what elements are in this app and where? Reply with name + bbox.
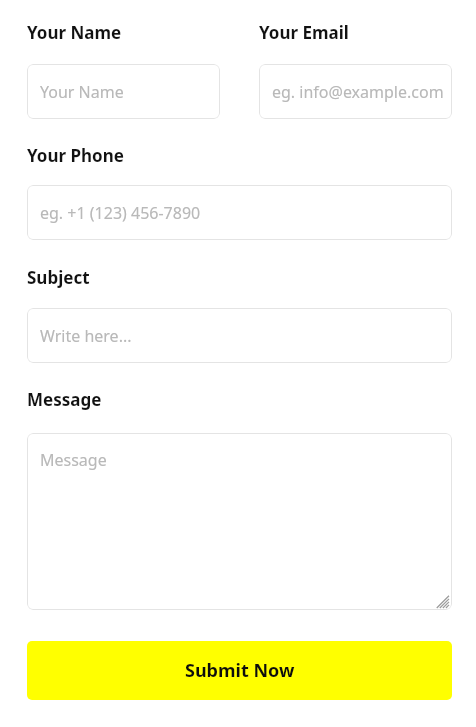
staticText: Your Name (27, 21, 122, 44)
staticText: Submit Now (185, 658, 295, 683)
staticText: Your Name (40, 81, 124, 103)
staticText: Message (40, 449, 107, 471)
button[interactable]: eg. +1 (123) 456-7890 (27, 185, 452, 240)
button[interactable]: Submit Now (27, 641, 452, 700)
staticText: Subject (27, 266, 90, 289)
button[interactable]: Message (27, 433, 452, 610)
button[interactable]: Write here... (27, 308, 452, 363)
staticText: Message (27, 388, 102, 411)
staticText: Write here... (40, 325, 132, 347)
staticText: eg. +1 (123) 456-7890 (40, 202, 201, 224)
staticText: Your Phone (27, 144, 124, 167)
staticText: Your Email (259, 21, 349, 44)
staticText: eg. info@example.com (272, 81, 444, 103)
button[interactable]: eg. info@example.com (259, 64, 452, 119)
button[interactable]: Your Name (27, 64, 220, 119)
